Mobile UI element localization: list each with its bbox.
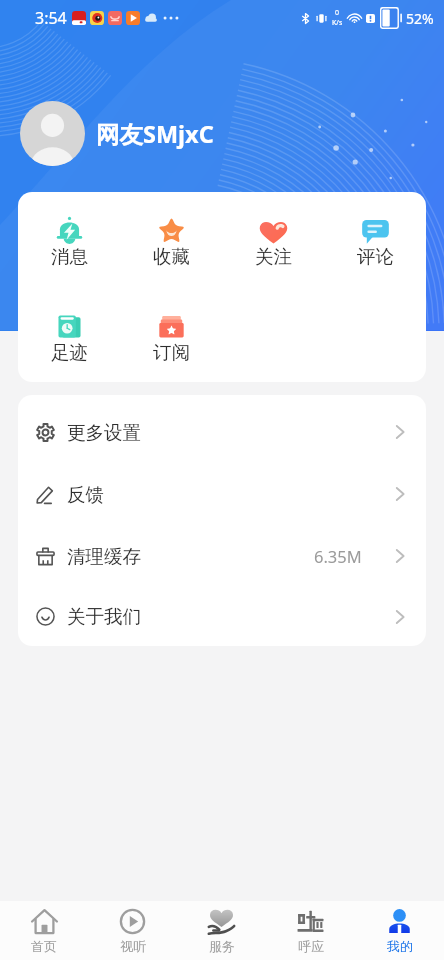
staticText: 评论	[357, 245, 394, 268]
button[interactable]: 清理缓存	[18, 525, 426, 587]
staticText: 网友SMjxC	[96, 118, 214, 150]
staticText: 更多设置	[67, 421, 141, 444]
staticText: 清理缓存	[67, 545, 141, 568]
button[interactable]: 评论	[324, 216, 426, 268]
staticText: 反馈	[67, 483, 104, 506]
button[interactable]: 呼应	[266, 901, 355, 960]
button[interactable]: 网友SMjxC	[20, 101, 214, 166]
staticText: 我的	[387, 938, 413, 954]
button[interactable]: 关于我们	[18, 587, 426, 646]
staticText: 关注	[255, 245, 292, 268]
button[interactable]: 反馈	[18, 463, 426, 525]
button[interactable]: 我的	[355, 901, 444, 960]
staticText: 0	[335, 8, 340, 18]
staticText: 首页	[31, 938, 57, 954]
staticText: 52%	[406, 9, 434, 28]
button[interactable]: 消息	[18, 216, 120, 268]
button[interactable]: 足迹	[18, 312, 120, 364]
staticText: 呼应	[298, 938, 324, 954]
button[interactable]: 关注	[222, 216, 324, 268]
staticText: 3:54	[35, 7, 67, 29]
button[interactable]: 视听	[88, 901, 177, 960]
button[interactable]: 更多设置	[18, 401, 426, 463]
staticText: 足迹	[51, 341, 88, 364]
staticText: 收藏	[153, 245, 190, 268]
button[interactable]: 订阅	[120, 312, 222, 364]
staticText: 消息	[51, 245, 88, 268]
staticText: 服务	[209, 938, 235, 954]
staticText: 6.35M	[314, 545, 362, 567]
button[interactable]: 服务	[177, 901, 266, 960]
button[interactable]: 首页	[0, 901, 88, 960]
staticText: 关于我们	[67, 605, 141, 628]
button[interactable]: 收藏	[120, 216, 222, 268]
staticText: 视听	[120, 938, 146, 954]
staticText: K/s	[332, 18, 343, 28]
staticText: 订阅	[153, 341, 190, 364]
